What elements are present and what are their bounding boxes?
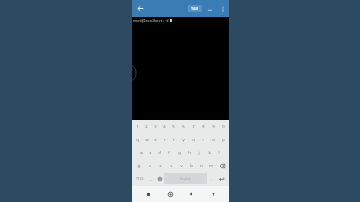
button[interactable]: x bbox=[155, 160, 166, 171]
staticText: p bbox=[222, 137, 225, 143]
staticText: m bbox=[209, 163, 213, 169]
staticText: f bbox=[168, 150, 170, 156]
button[interactable]: Minimize bbox=[204, 3, 215, 14]
button[interactable]: t bbox=[169, 134, 178, 145]
staticText: ?123 bbox=[136, 176, 144, 181]
staticText: b bbox=[190, 163, 193, 169]
staticText: 2 bbox=[145, 124, 148, 130]
button[interactable]: Change keyboard language bbox=[155, 172, 164, 185]
button[interactable]: 5 bbox=[169, 122, 178, 132]
button[interactable]: n bbox=[196, 160, 206, 171]
button[interactable]: 9 bbox=[208, 122, 218, 132]
button[interactable]: Recent apps bbox=[142, 188, 154, 200]
staticText: 5 bbox=[172, 124, 175, 130]
button[interactable]: u bbox=[188, 134, 198, 145]
button[interactable]: Home bbox=[164, 188, 176, 200]
button[interactable]: 1 bbox=[133, 122, 142, 132]
button[interactable]: root@localhost:~# bbox=[132, 17, 229, 120]
button[interactable]: f bbox=[164, 147, 174, 158]
button[interactable]: Back bbox=[185, 188, 197, 200]
staticText: 4 bbox=[163, 124, 166, 130]
staticText: y bbox=[182, 137, 185, 143]
button[interactable]: s bbox=[146, 147, 155, 158]
staticText: 3 bbox=[154, 124, 157, 130]
button[interactable]: r bbox=[160, 134, 169, 145]
staticText: j bbox=[198, 150, 200, 156]
staticText: 9 bbox=[212, 124, 215, 130]
button[interactable]: Back bbox=[133, 1, 148, 16]
button[interactable]: v bbox=[176, 160, 186, 171]
button[interactable]: 7 bbox=[188, 122, 198, 132]
staticText: k bbox=[208, 150, 211, 156]
staticText: c bbox=[170, 163, 173, 169]
staticText: i bbox=[202, 137, 204, 143]
button[interactable]: a bbox=[137, 147, 146, 158]
button[interactable]: 6 bbox=[178, 122, 188, 132]
button[interactable]: ?123 bbox=[133, 172, 147, 185]
staticText: t bbox=[173, 137, 175, 143]
button[interactable]: 8 bbox=[198, 122, 208, 132]
staticText: 1 bbox=[136, 124, 139, 130]
staticText: q bbox=[136, 137, 139, 143]
staticText: l bbox=[218, 150, 220, 156]
staticText: d bbox=[158, 150, 161, 156]
button[interactable]: c bbox=[166, 160, 176, 171]
staticText: o bbox=[212, 137, 215, 143]
staticText: s bbox=[149, 150, 152, 156]
staticText: g bbox=[178, 150, 181, 156]
button[interactable]: English bbox=[164, 173, 207, 184]
staticText: 0 bbox=[222, 124, 225, 130]
button[interactable]: Backspace bbox=[216, 159, 228, 172]
staticText: z bbox=[149, 163, 151, 169]
staticText: . bbox=[210, 176, 212, 182]
staticText: 6 bbox=[182, 124, 185, 130]
button[interactable]: 2 bbox=[142, 122, 151, 132]
button[interactable]: k bbox=[204, 147, 214, 158]
button[interactable]: p bbox=[218, 134, 228, 145]
button[interactable]: More options bbox=[217, 3, 228, 14]
button[interactable]: g bbox=[174, 147, 184, 158]
button[interactable]: w bbox=[142, 134, 151, 145]
button[interactable]: 3 bbox=[151, 122, 160, 132]
staticText: r bbox=[164, 137, 166, 143]
staticText: u bbox=[192, 137, 195, 143]
button[interactable]: 0 bbox=[218, 122, 228, 132]
staticText: TAB bbox=[191, 6, 199, 11]
button[interactable]: Shift bbox=[133, 159, 144, 172]
button[interactable]: , bbox=[147, 173, 155, 184]
staticText: x bbox=[159, 163, 162, 169]
button[interactable]: Enter bbox=[215, 172, 228, 185]
button[interactable]: d bbox=[155, 147, 164, 158]
button[interactable]: m bbox=[206, 160, 216, 171]
staticText: English bbox=[180, 177, 191, 181]
staticText: v bbox=[180, 163, 183, 169]
button[interactable]: 4 bbox=[160, 122, 169, 132]
staticText: w bbox=[145, 137, 149, 143]
button[interactable]: e bbox=[151, 134, 160, 145]
staticText: root@localhost:~# bbox=[133, 18, 169, 23]
button[interactable]: b bbox=[186, 160, 196, 171]
button[interactable]: i bbox=[198, 134, 208, 145]
button[interactable]: l bbox=[214, 147, 224, 158]
staticText: 8 bbox=[202, 124, 205, 130]
button[interactable]: j bbox=[194, 147, 204, 158]
staticText: h bbox=[188, 150, 191, 156]
staticText: 7 bbox=[192, 124, 195, 130]
staticText: a bbox=[140, 150, 143, 156]
staticText: n bbox=[200, 163, 203, 169]
button[interactable]: y bbox=[178, 134, 188, 145]
button[interactable]: h bbox=[184, 147, 194, 158]
button[interactable]: TAB bbox=[188, 5, 202, 12]
button[interactable]: z bbox=[144, 160, 155, 171]
staticText: e bbox=[154, 137, 157, 143]
button[interactable]: q bbox=[133, 134, 142, 145]
button[interactable]: o bbox=[208, 134, 218, 145]
button[interactable]: Hide keyboard bbox=[207, 188, 219, 200]
staticText: , bbox=[150, 176, 152, 182]
